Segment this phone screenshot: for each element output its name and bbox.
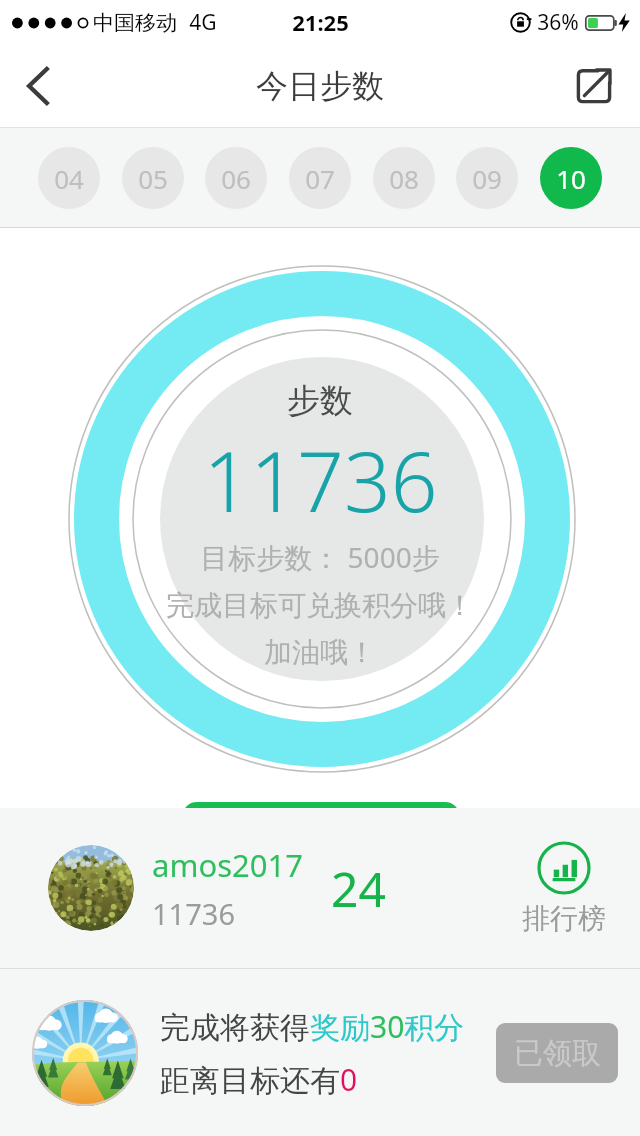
- staticText: 中国移动: [93, 10, 177, 36]
- staticText: 05: [138, 161, 168, 196]
- staticText: amos2017: [152, 844, 303, 886]
- button[interactable]: Back: [6, 53, 72, 119]
- staticText: 排行榜: [522, 901, 606, 936]
- button[interactable]: 10: [540, 147, 602, 209]
- button[interactable]: 04: [38, 147, 100, 209]
- staticText: 07: [305, 161, 335, 196]
- button[interactable]: Share: [564, 56, 624, 116]
- staticText: 24: [331, 856, 386, 921]
- staticText: 加油哦！: [264, 635, 376, 670]
- button[interactable]: 排行榜: [514, 833, 614, 944]
- staticText: 4G: [189, 8, 217, 37]
- staticText: 08: [389, 161, 419, 196]
- staticText: 10: [556, 161, 586, 196]
- button[interactable]: 08: [373, 147, 435, 209]
- staticText: 已领取: [514, 1035, 601, 1072]
- staticText: 09: [472, 161, 502, 196]
- button[interactable]: 09: [456, 147, 518, 209]
- staticText: 06: [221, 161, 251, 196]
- button[interactable]: 05: [122, 147, 184, 209]
- staticText: 21:25: [292, 7, 349, 37]
- staticText: 今日步数: [256, 66, 384, 106]
- staticText: 距离目标还有0: [160, 1059, 358, 1100]
- button[interactable]: 07: [289, 147, 351, 209]
- staticText: 完成将获得奖励30积分: [160, 1006, 465, 1047]
- button[interactable]: 06: [205, 147, 267, 209]
- button[interactable]: Avatar: [48, 845, 134, 931]
- staticText: 04: [54, 161, 84, 196]
- staticText: 完成目标可兑换积分哦！: [166, 588, 474, 623]
- staticText: 11736: [203, 424, 438, 536]
- staticText: 36%: [537, 8, 579, 37]
- staticText: 目标步数： 5000步: [200, 538, 440, 576]
- staticText: 步数: [287, 380, 353, 422]
- staticText: 11736: [152, 894, 235, 933]
- button[interactable]: 已领取: [496, 1023, 618, 1083]
